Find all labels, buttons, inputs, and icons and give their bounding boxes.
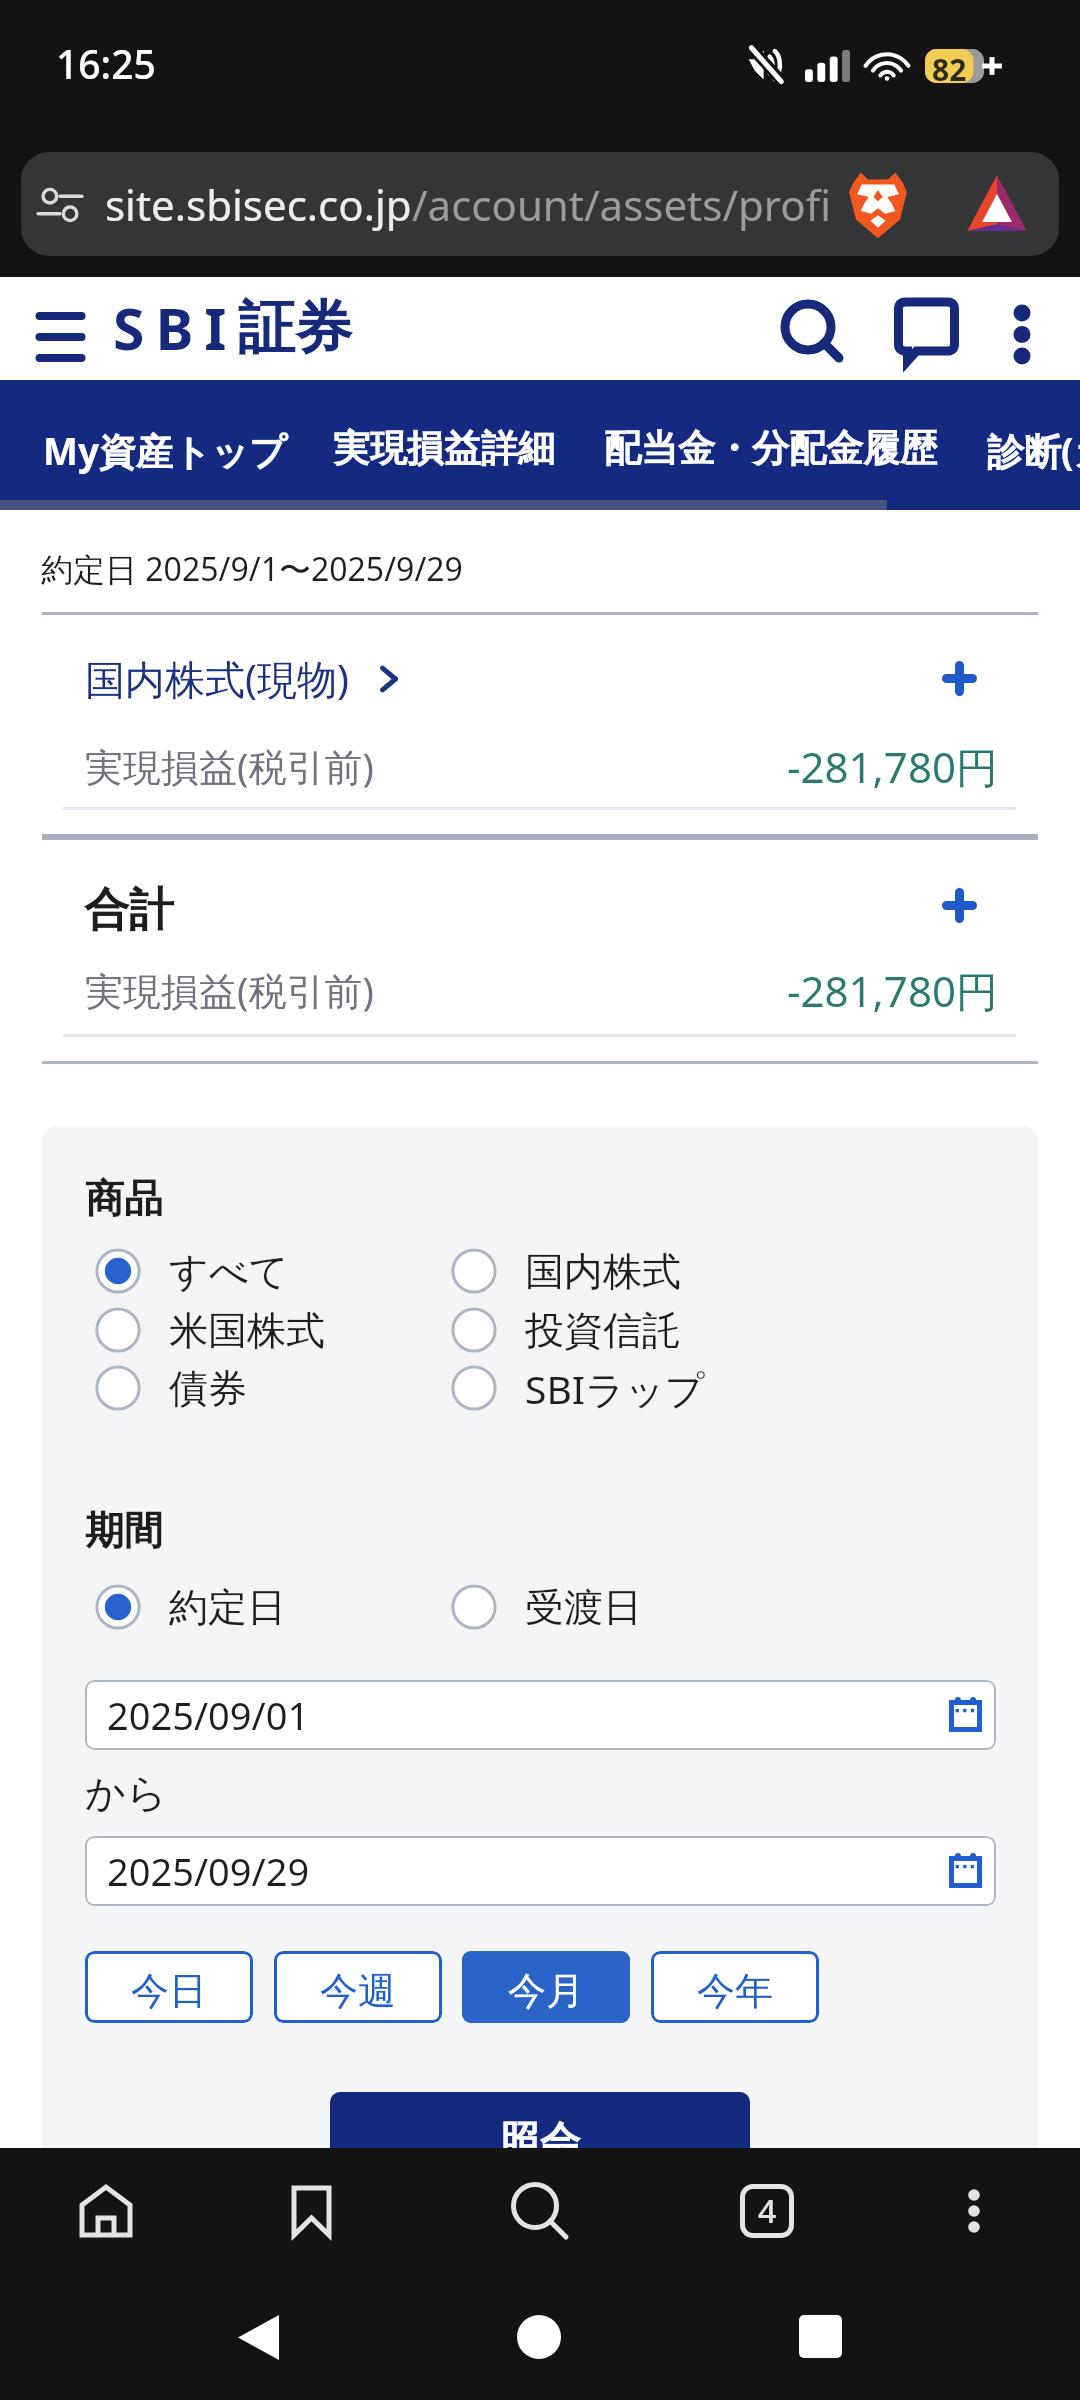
staticText: 2025/09/01	[107, 1689, 949, 1741]
staticText: 債券	[169, 1364, 247, 1413]
staticText: すべて	[169, 1247, 289, 1296]
button[interactable]: Recents	[779, 2290, 861, 2400]
button[interactable]: 約定日	[96, 1578, 286, 1636]
button[interactable]: すべて	[96, 1242, 289, 1300]
staticText: -281,780円	[787, 962, 998, 1019]
button[interactable]: Chat	[884, 277, 964, 380]
staticText: 投資信託	[525, 1306, 681, 1355]
staticText: 約定日	[169, 1583, 286, 1632]
button[interactable]: Bookmarks	[274, 2148, 350, 2290]
button[interactable]: Menu	[36, 312, 85, 368]
staticText: -281,780円	[787, 738, 998, 795]
button[interactable]: 国内株式(現物)	[85, 651, 398, 706]
button[interactable]: 実現損益詳細	[333, 425, 555, 472]
other: Pick date	[949, 1698, 982, 1732]
staticText: 国内株式	[525, 1247, 681, 1296]
staticText: 配当金・分配金履歴	[604, 425, 937, 472]
other: BAT rewards	[966, 175, 1028, 231]
button[interactable]: My資産トップ	[43, 425, 287, 476]
other: Site settings	[38, 185, 82, 225]
staticText: 今年	[697, 1967, 773, 2015]
button[interactable]: 投資信託	[452, 1301, 681, 1359]
button[interactable]: Expand	[942, 661, 977, 696]
staticText: 82	[932, 49, 967, 83]
staticText: 商品	[85, 1174, 163, 1223]
button[interactable]: 今週	[274, 1951, 442, 2023]
staticText: 実現損益詳細	[333, 425, 555, 472]
staticText: site.sbisec.co.jp	[105, 176, 412, 233]
button[interactable]: 受渡日	[452, 1578, 642, 1636]
staticText: 今日	[131, 1967, 207, 2015]
staticText: /account/assets/profi	[412, 176, 832, 233]
staticText: 米国株式	[169, 1306, 325, 1355]
staticText: 国内株式(現物)	[85, 651, 349, 706]
staticText: 16:25	[56, 37, 156, 90]
staticText: SBIラップ	[525, 1362, 705, 1415]
button[interactable]: More options	[992, 277, 1052, 380]
staticText: 実現損益(税引前)	[85, 964, 374, 1016]
button[interactable]: 2025/09/29	[85, 1836, 996, 1906]
staticText: 2025/09/29	[107, 1845, 949, 1897]
button[interactable]: 2025/09/01	[85, 1680, 996, 1750]
staticText: 期間	[85, 1506, 163, 1555]
button[interactable]: 診断(カ	[987, 425, 1080, 476]
other: Pick date	[949, 1854, 982, 1888]
button[interactable]: 今年	[651, 1951, 819, 2023]
staticText: 今週	[320, 1967, 396, 2015]
button[interactable]: Search	[768, 277, 850, 380]
button[interactable]: SBIラップ	[452, 1359, 705, 1417]
staticText: 4	[758, 2189, 777, 2233]
staticText: から	[85, 1768, 167, 1818]
button[interactable]: 国内株式	[452, 1242, 681, 1300]
button[interactable]: 今月	[462, 1951, 630, 2023]
button[interactable]: 配当金・分配金履歴	[604, 425, 937, 472]
button[interactable]: Home	[499, 2290, 579, 2400]
button[interactable]: 債券	[96, 1359, 247, 1417]
button[interactable]: Back	[218, 2290, 300, 2400]
button[interactable]: 今日	[85, 1951, 253, 2023]
button[interactable]: 照会	[330, 2092, 750, 2212]
button[interactable]: Site settings	[21, 152, 1059, 256]
staticText: 診断(カ	[987, 425, 1080, 476]
staticText: 約定日 2025/9/1〜2025/9/29	[41, 547, 463, 591]
button[interactable]: Tabs	[720, 2148, 814, 2290]
staticText: 証券	[238, 292, 352, 364]
staticText: 受渡日	[525, 1583, 642, 1632]
staticText: 合計	[84, 882, 174, 939]
other: Brave shields	[849, 169, 907, 239]
staticText: 実現損益(税引前)	[85, 740, 374, 792]
staticText: My資産トップ	[43, 425, 287, 476]
button[interactable]: 米国株式	[96, 1301, 325, 1359]
button[interactable]: Search	[495, 2148, 585, 2290]
staticText: 今月	[508, 1967, 584, 2015]
staticText: 照会	[500, 2116, 580, 2166]
button[interactable]: Expand	[942, 888, 977, 923]
button[interactable]: More	[944, 2148, 1004, 2290]
staticText: SBI	[113, 289, 238, 367]
button[interactable]: Home	[62, 2148, 150, 2290]
